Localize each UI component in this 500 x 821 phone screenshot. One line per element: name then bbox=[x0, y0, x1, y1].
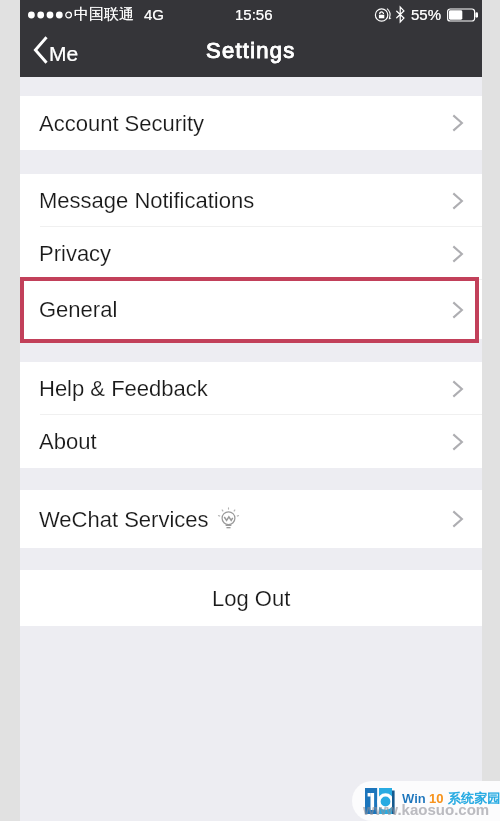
staticText: Me bbox=[49, 42, 79, 65]
button[interactable]: Back to Me bbox=[20, 40, 89, 66]
staticText: Win bbox=[402, 791, 426, 806]
button[interactable]: Privacy bbox=[20, 227, 482, 280]
staticText: www.kaosuo.com bbox=[363, 801, 490, 818]
button[interactable]: General bbox=[20, 280, 482, 339]
button[interactable]: Log Out bbox=[20, 570, 482, 626]
button[interactable]: WeChat Services bbox=[20, 490, 482, 548]
staticText: Account Security bbox=[39, 111, 205, 136]
staticText: About bbox=[39, 429, 97, 454]
staticText: 55% bbox=[411, 6, 442, 23]
staticText: General bbox=[39, 297, 118, 322]
staticText: Message Notifications bbox=[39, 188, 255, 213]
button[interactable]: About bbox=[20, 415, 482, 468]
staticText: 系统家园 bbox=[448, 790, 500, 806]
button[interactable]: Message Notifications bbox=[20, 174, 482, 227]
staticText: 中国联通 bbox=[74, 5, 134, 24]
button[interactable]: Account Security bbox=[20, 96, 482, 150]
staticText: 10 bbox=[429, 791, 444, 806]
staticText: WeChat Services bbox=[39, 507, 209, 532]
button[interactable]: Help & Feedback bbox=[20, 362, 482, 415]
staticText: Settings bbox=[206, 38, 296, 63]
staticText: Help & Feedback bbox=[39, 376, 208, 401]
staticText: Settings bbox=[206, 38, 296, 63]
staticText: Privacy bbox=[39, 241, 112, 266]
staticText: 4G bbox=[144, 6, 165, 23]
staticText: 15:56 bbox=[235, 6, 273, 23]
staticText: Log Out bbox=[212, 586, 291, 611]
